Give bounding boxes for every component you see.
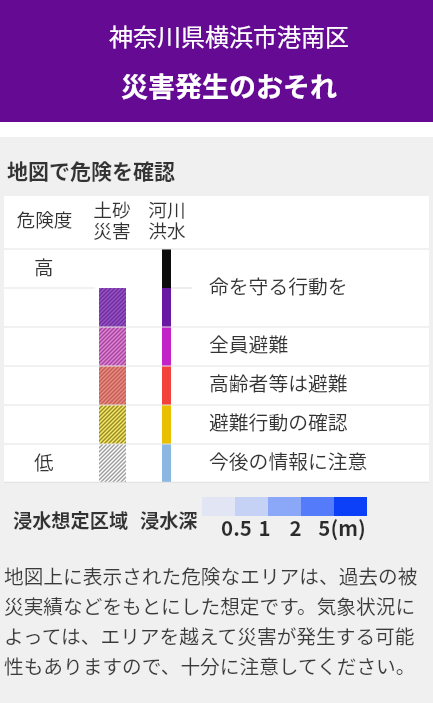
staticText: 高	[34, 252, 54, 280]
staticText: 命を守る行動を	[209, 271, 348, 300]
staticText: 土砂 災害	[93, 195, 131, 243]
staticText: 浸水想定区域	[13, 506, 129, 534]
staticText: 今後の情報に注意	[209, 446, 368, 475]
staticText: 神奈川県横浜市港南区	[109, 18, 349, 53]
staticText: 全員避難	[209, 329, 289, 358]
button[interactable]: 危険度	[4, 196, 429, 483]
staticText: 低	[34, 447, 54, 475]
staticText: 2	[289, 512, 302, 542]
staticText: 危険度	[16, 205, 73, 232]
staticText: 避難行動の確認	[209, 407, 348, 436]
staticText: 災害発生のおそれ	[121, 66, 337, 105]
staticText: 5(m)	[318, 512, 366, 542]
staticText: 地図で危険を確認	[7, 155, 175, 185]
staticText: 0.5	[221, 512, 252, 542]
staticText: 高齢者等は避難	[209, 368, 348, 397]
staticText: 地図上に表示された危険なエリアは、過去の被災実績などをもとにした想定です。気象状…	[4, 561, 429, 680]
button[interactable]: 神奈川県横浜市港南区	[0, 0, 433, 122]
staticText: 浸水深	[140, 506, 198, 534]
staticText: 1	[258, 512, 271, 542]
staticText: 河川 洪水	[148, 195, 186, 243]
